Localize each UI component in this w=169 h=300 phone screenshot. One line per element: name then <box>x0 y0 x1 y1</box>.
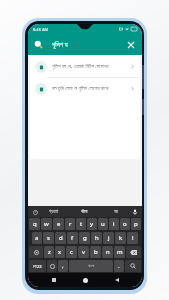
button[interactable]: p <box>131 218 141 230</box>
staticText: 8:46 AM <box>33 27 49 32</box>
staticText: s <box>47 234 50 242</box>
button[interactable]: j <box>103 232 114 244</box>
staticText: r <box>69 220 72 228</box>
button[interactable]: Shift <box>29 246 43 258</box>
staticText: বাংলা <box>88 264 95 268</box>
button[interactable]: r <box>65 218 75 230</box>
button[interactable]: d <box>55 232 66 244</box>
staticText: y <box>90 220 94 228</box>
staticText: g <box>83 234 87 242</box>
button[interactable]: Search <box>33 39 44 50</box>
button[interactable]: o <box>120 218 130 230</box>
button[interactable]: e <box>53 218 64 230</box>
staticText: e <box>57 220 61 228</box>
button[interactable]: x <box>55 246 65 258</box>
button[interactable]: Back <box>111 274 123 286</box>
staticText: x <box>58 248 62 256</box>
staticText: v <box>82 248 86 256</box>
staticText: ?123 <box>33 264 42 269</box>
staticText: , <box>62 262 64 270</box>
staticText: c <box>70 248 73 256</box>
button[interactable]: i <box>109 218 119 230</box>
button[interactable]: বল তুমি লোক না পুলিশ লোকের মাঝে <box>30 78 140 99</box>
button[interactable]: , <box>58 260 68 272</box>
button[interactable]: Space <box>69 260 113 272</box>
button[interactable]: w <box>41 218 52 230</box>
staticText: u <box>101 220 105 228</box>
button[interactable]: Voice input <box>131 208 139 216</box>
button[interactable]: Home <box>79 274 91 286</box>
button[interactable]: পুলিশ বল যে, তোমরা বিটিশ লোকদের <box>30 56 140 77</box>
staticText: b <box>94 248 98 256</box>
button[interactable]: Emoji <box>47 260 57 272</box>
staticText: . <box>118 262 120 270</box>
staticText: i <box>113 220 115 228</box>
button[interactable]: l <box>127 232 138 244</box>
button[interactable]: ?123 <box>29 260 46 272</box>
staticText: d <box>59 234 63 242</box>
button[interactable]: s <box>43 232 54 244</box>
staticText: পাবে <box>81 209 88 214</box>
button[interactable]: পাবে <box>69 206 100 217</box>
button[interactable]: g <box>79 232 90 244</box>
staticText: j <box>108 234 110 242</box>
staticText: পড়লো <box>49 209 59 214</box>
staticText: নয় <box>114 209 118 214</box>
button[interactable]: নয় <box>100 206 131 217</box>
button[interactable]: Clear search <box>125 39 137 51</box>
button[interactable]: q <box>29 218 40 230</box>
button[interactable]: y <box>87 218 97 230</box>
staticText: w <box>44 220 49 228</box>
button[interactable]: Search <box>125 260 141 272</box>
button[interactable]: t <box>76 218 86 230</box>
button[interactable]: পড়লো <box>39 206 69 217</box>
staticText: q <box>33 220 37 228</box>
button[interactable]: m <box>114 246 125 258</box>
staticText: o <box>123 220 127 228</box>
staticText: n <box>106 248 110 256</box>
button[interactable]: v <box>78 246 89 258</box>
button[interactable]: Recent apps <box>48 274 60 286</box>
button[interactable]: k <box>115 232 126 244</box>
staticText: পুলিশ বল যে, তোমরা বিটিশ লোকদের <box>52 63 127 70</box>
staticText: f <box>71 234 74 242</box>
button[interactable]: z <box>44 246 54 258</box>
button[interactable]: u <box>98 218 108 230</box>
button[interactable]: a <box>32 232 42 244</box>
button[interactable]: f <box>67 232 78 244</box>
button[interactable]: Clipboard history <box>31 208 39 216</box>
staticText: l <box>132 234 134 242</box>
button[interactable]: c <box>66 246 77 258</box>
staticText: z <box>48 248 51 256</box>
staticText: পুলিশ য <box>52 40 68 49</box>
button[interactable]: b <box>90 246 101 258</box>
button[interactable]: Backspace <box>126 246 141 258</box>
button[interactable]: h <box>91 232 102 244</box>
staticText: p <box>134 220 138 228</box>
staticText: k <box>119 234 123 242</box>
button[interactable]: . <box>114 260 124 272</box>
staticText: a <box>35 234 39 242</box>
staticText: m <box>117 248 123 256</box>
staticText: বল তুমি লোক না পুলিশ লোকের মাঝে <box>52 85 127 92</box>
staticText: h <box>95 234 99 242</box>
staticText: t <box>80 220 83 228</box>
button[interactable]: n <box>102 246 113 258</box>
